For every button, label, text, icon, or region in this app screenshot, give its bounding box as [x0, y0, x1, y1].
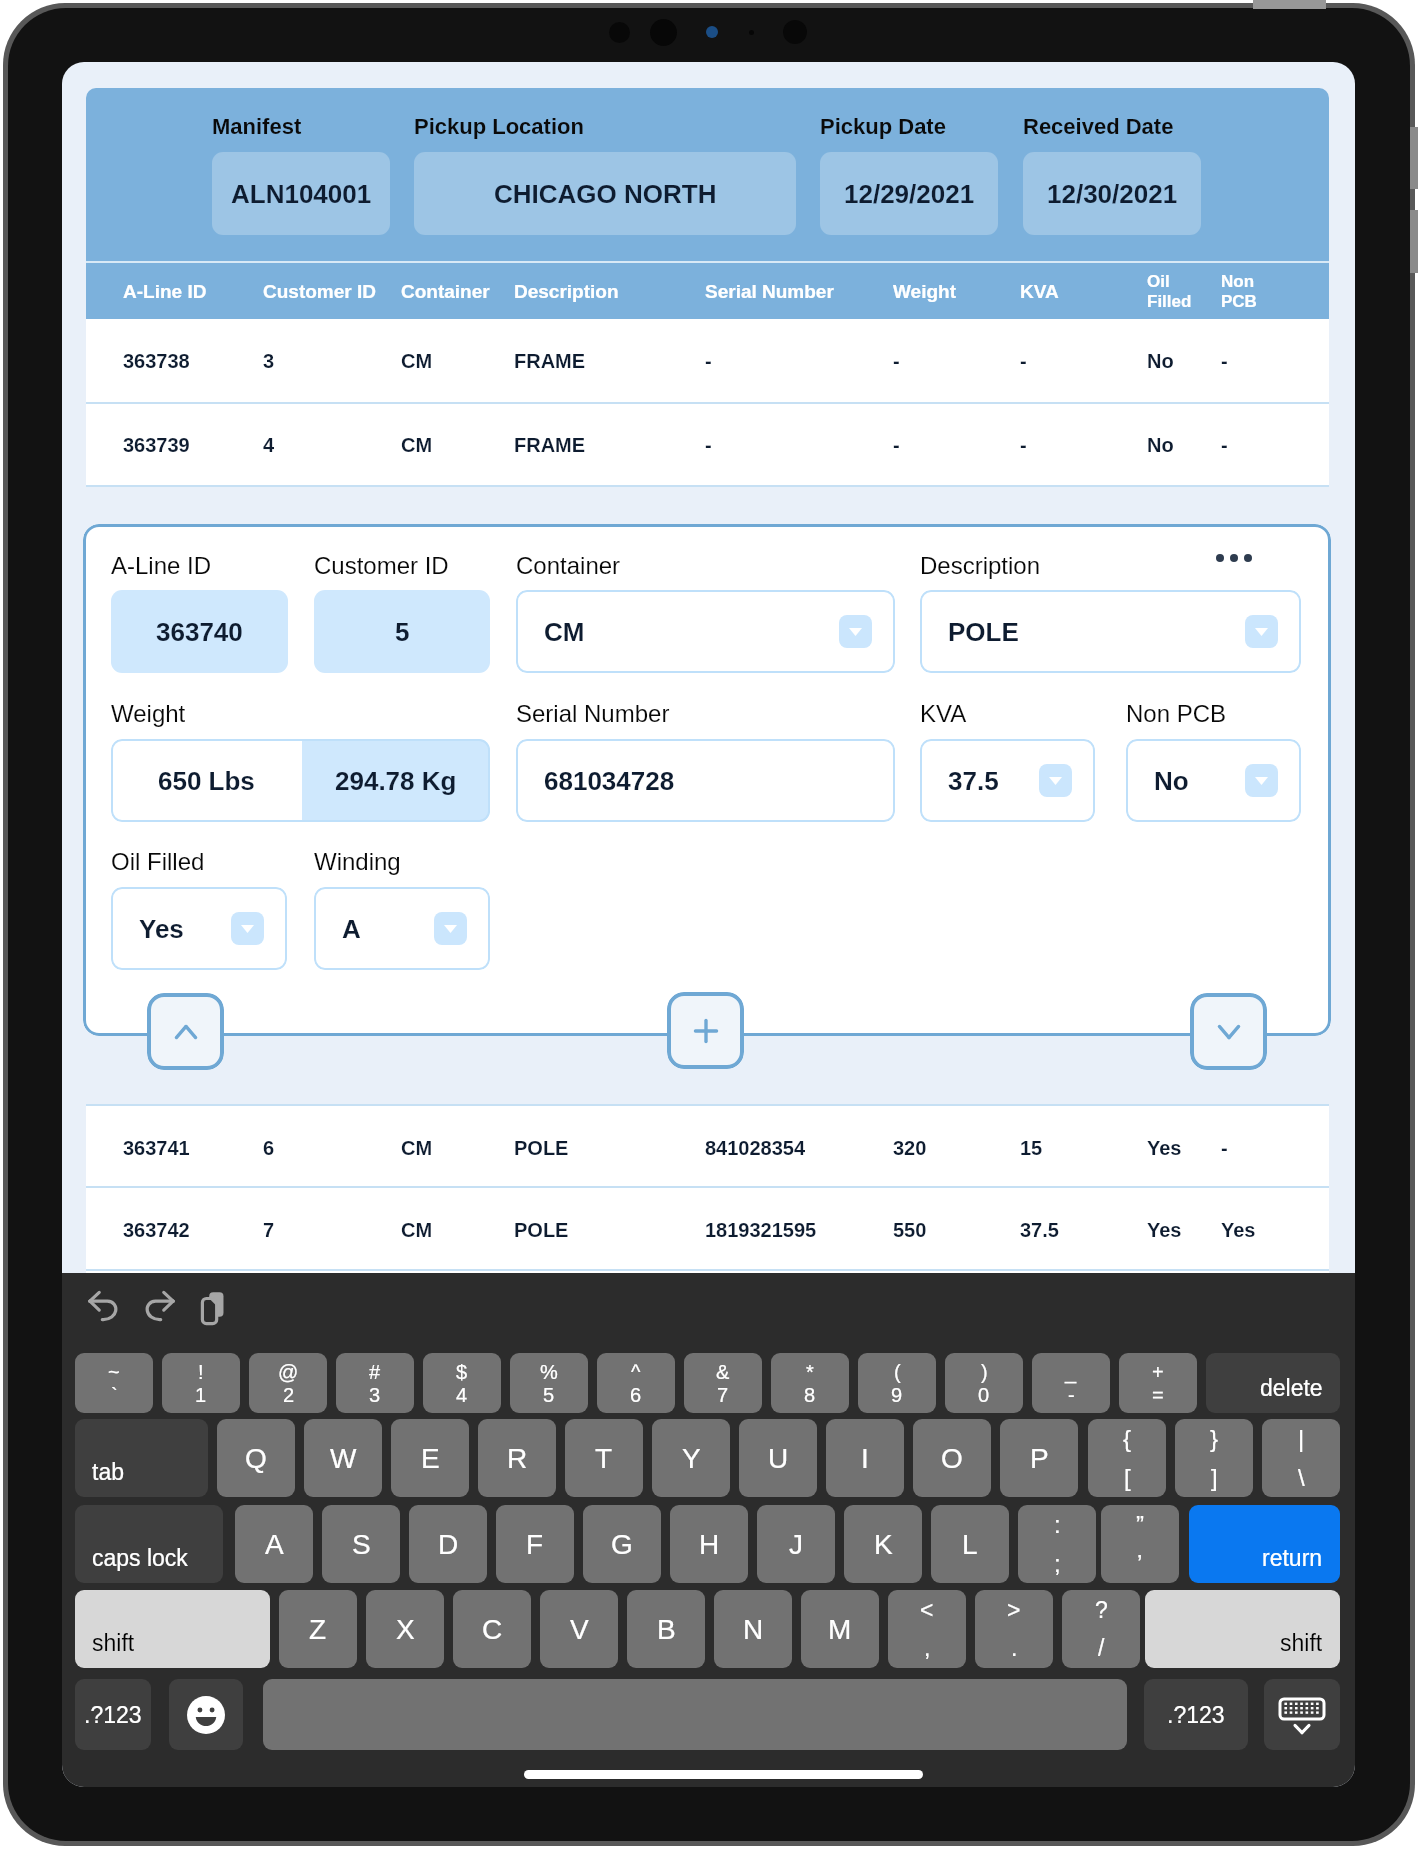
staticText: 681034728 [544, 766, 675, 795]
button[interactable]: N [714, 1590, 792, 1668]
button[interactable]: 363741 [86, 1106, 1329, 1189]
button[interactable]: Undo [84, 1288, 124, 1328]
staticText: POLE [514, 1219, 569, 1241]
button[interactable]: CHICAGO NORTH [414, 152, 796, 235]
button[interactable]: 37.5 [920, 739, 1095, 822]
button[interactable]: $ [423, 1353, 501, 1413]
button[interactable]: E [391, 1419, 469, 1497]
button[interactable]: 363742 [86, 1188, 1329, 1271]
button[interactable]: 650 Lbs [111, 739, 302, 822]
button[interactable]: tab [75, 1419, 208, 1497]
button[interactable]: Q [217, 1419, 295, 1497]
staticText: 363738 [123, 350, 190, 372]
button[interactable]: .?123 [75, 1679, 151, 1750]
button[interactable]: POLE [920, 590, 1301, 673]
button[interactable]: B [627, 1590, 705, 1668]
button[interactable]: R [478, 1419, 556, 1497]
button[interactable]: S [322, 1505, 400, 1583]
button[interactable]: J [757, 1505, 835, 1583]
button[interactable]: 681034728 [516, 739, 895, 822]
button[interactable]: > [975, 1590, 1053, 1668]
button[interactable]: : [1018, 1505, 1096, 1583]
staticText: * [806, 1361, 814, 1383]
staticText: F [526, 1529, 544, 1560]
button[interactable]: # [336, 1353, 414, 1413]
button[interactable]: shift [1145, 1590, 1340, 1668]
button[interactable]: No [1126, 739, 1301, 822]
button[interactable]: 363738 [86, 319, 1329, 402]
staticText: { [1123, 1425, 1132, 1452]
button[interactable]: X [366, 1590, 444, 1668]
button[interactable]: K [844, 1505, 922, 1583]
button[interactable]: ( [858, 1353, 936, 1413]
button[interactable]: F [496, 1505, 574, 1583]
staticText: Container [516, 552, 621, 579]
button[interactable]: 294.78 Kg [302, 739, 490, 822]
button[interactable]: 5 [314, 590, 490, 673]
staticText: 9 [891, 1384, 903, 1406]
button[interactable]: Redo [139, 1288, 179, 1328]
button[interactable]: P [1000, 1419, 1078, 1497]
button[interactable]: .?123 [1144, 1679, 1248, 1750]
button[interactable]: caps lock [75, 1505, 223, 1583]
button[interactable]: CM [516, 590, 895, 673]
button[interactable]: O [913, 1419, 991, 1497]
staticText: 363739 [123, 434, 190, 456]
button[interactable]: C [453, 1590, 531, 1668]
button[interactable]: Emoji [169, 1679, 243, 1750]
button[interactable]: W [304, 1419, 382, 1497]
button[interactable]: { [1088, 1419, 1166, 1497]
staticText: CM [401, 1219, 433, 1241]
button[interactable]: | [1262, 1419, 1340, 1497]
button[interactable]: H [670, 1505, 748, 1583]
staticText: caps lock [92, 1545, 188, 1571]
button[interactable]: ! [162, 1353, 240, 1413]
button[interactable]: ” [1101, 1505, 1179, 1583]
button[interactable]: return [1189, 1505, 1340, 1583]
button[interactable]: G [583, 1505, 661, 1583]
button[interactable]: @ [249, 1353, 327, 1413]
button[interactable]: D [409, 1505, 487, 1583]
button[interactable]: ^ [597, 1353, 675, 1413]
button[interactable]: Z [279, 1590, 357, 1668]
button[interactable]: _ [1032, 1353, 1110, 1413]
button[interactable]: delete [1206, 1353, 1340, 1413]
button[interactable]: Y [652, 1419, 730, 1497]
button[interactable]: Hide keyboard [1264, 1679, 1340, 1750]
button[interactable]: Next record [1190, 993, 1267, 1070]
button[interactable]: ~ [75, 1353, 153, 1413]
button[interactable]: V [540, 1590, 618, 1668]
button[interactable]: More options [1206, 541, 1262, 574]
button[interactable]: L [931, 1505, 1009, 1583]
button[interactable]: * [771, 1353, 849, 1413]
button[interactable]: 363739 [86, 403, 1329, 486]
button[interactable]: T [565, 1419, 643, 1497]
button[interactable]: } [1175, 1419, 1253, 1497]
button[interactable]: ALN104001 [212, 152, 390, 235]
button[interactable]: ? [1062, 1590, 1140, 1668]
button[interactable]: 12/30/2021 [1023, 152, 1201, 235]
button[interactable]: + [1119, 1353, 1197, 1413]
button[interactable]: ) [945, 1353, 1023, 1413]
staticText: 0 [978, 1384, 990, 1406]
button[interactable]: A [314, 887, 490, 970]
staticText: ALN104001 [231, 179, 372, 208]
button[interactable]: 12/29/2021 [820, 152, 998, 235]
button[interactable]: Add record [667, 992, 744, 1069]
button[interactable]: 363740 [111, 590, 288, 673]
button[interactable]: A [235, 1505, 313, 1583]
button[interactable]: I [826, 1419, 904, 1497]
button[interactable]: shift [75, 1590, 270, 1668]
staticText: ` [111, 1384, 118, 1406]
button[interactable]: M [801, 1590, 879, 1668]
button[interactable]: Paste [196, 1288, 236, 1328]
button[interactable]: Yes [111, 887, 287, 970]
staticText: - [893, 350, 900, 372]
button[interactable]: Previous record [147, 993, 224, 1070]
button[interactable]: & [684, 1353, 762, 1413]
button[interactable]: < [888, 1590, 966, 1668]
staticText: Yes [1147, 1137, 1182, 1159]
button[interactable]: % [510, 1353, 588, 1413]
button[interactable]: U [739, 1419, 817, 1497]
